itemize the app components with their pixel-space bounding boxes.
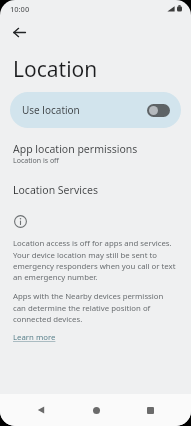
staticText: Location access is off for apps and serv… <box>13 238 178 282</box>
button[interactable]: App location permissions <box>0 141 191 169</box>
staticText: Location <box>13 55 98 84</box>
button[interactable]: Navigate up <box>6 19 32 45</box>
button[interactable]: Learn more <box>13 332 56 343</box>
button[interactable]: Use location <box>10 92 181 128</box>
staticText: Apps with the Nearby devices permission … <box>13 291 178 324</box>
staticText: Learn more <box>13 332 56 343</box>
button[interactable]: Home <box>82 396 110 424</box>
button[interactable]: Back <box>27 396 55 424</box>
staticText: 10:00 <box>10 4 30 14</box>
other: Information <box>14 215 27 228</box>
staticText: Location is off <box>13 156 59 166</box>
staticText: Use location <box>22 103 80 117</box>
staticText: Location Services <box>13 183 98 197</box>
staticText: App location permissions <box>13 142 138 156</box>
button[interactable]: Location Services <box>0 182 191 198</box>
button[interactable]: Recent apps <box>136 396 164 424</box>
